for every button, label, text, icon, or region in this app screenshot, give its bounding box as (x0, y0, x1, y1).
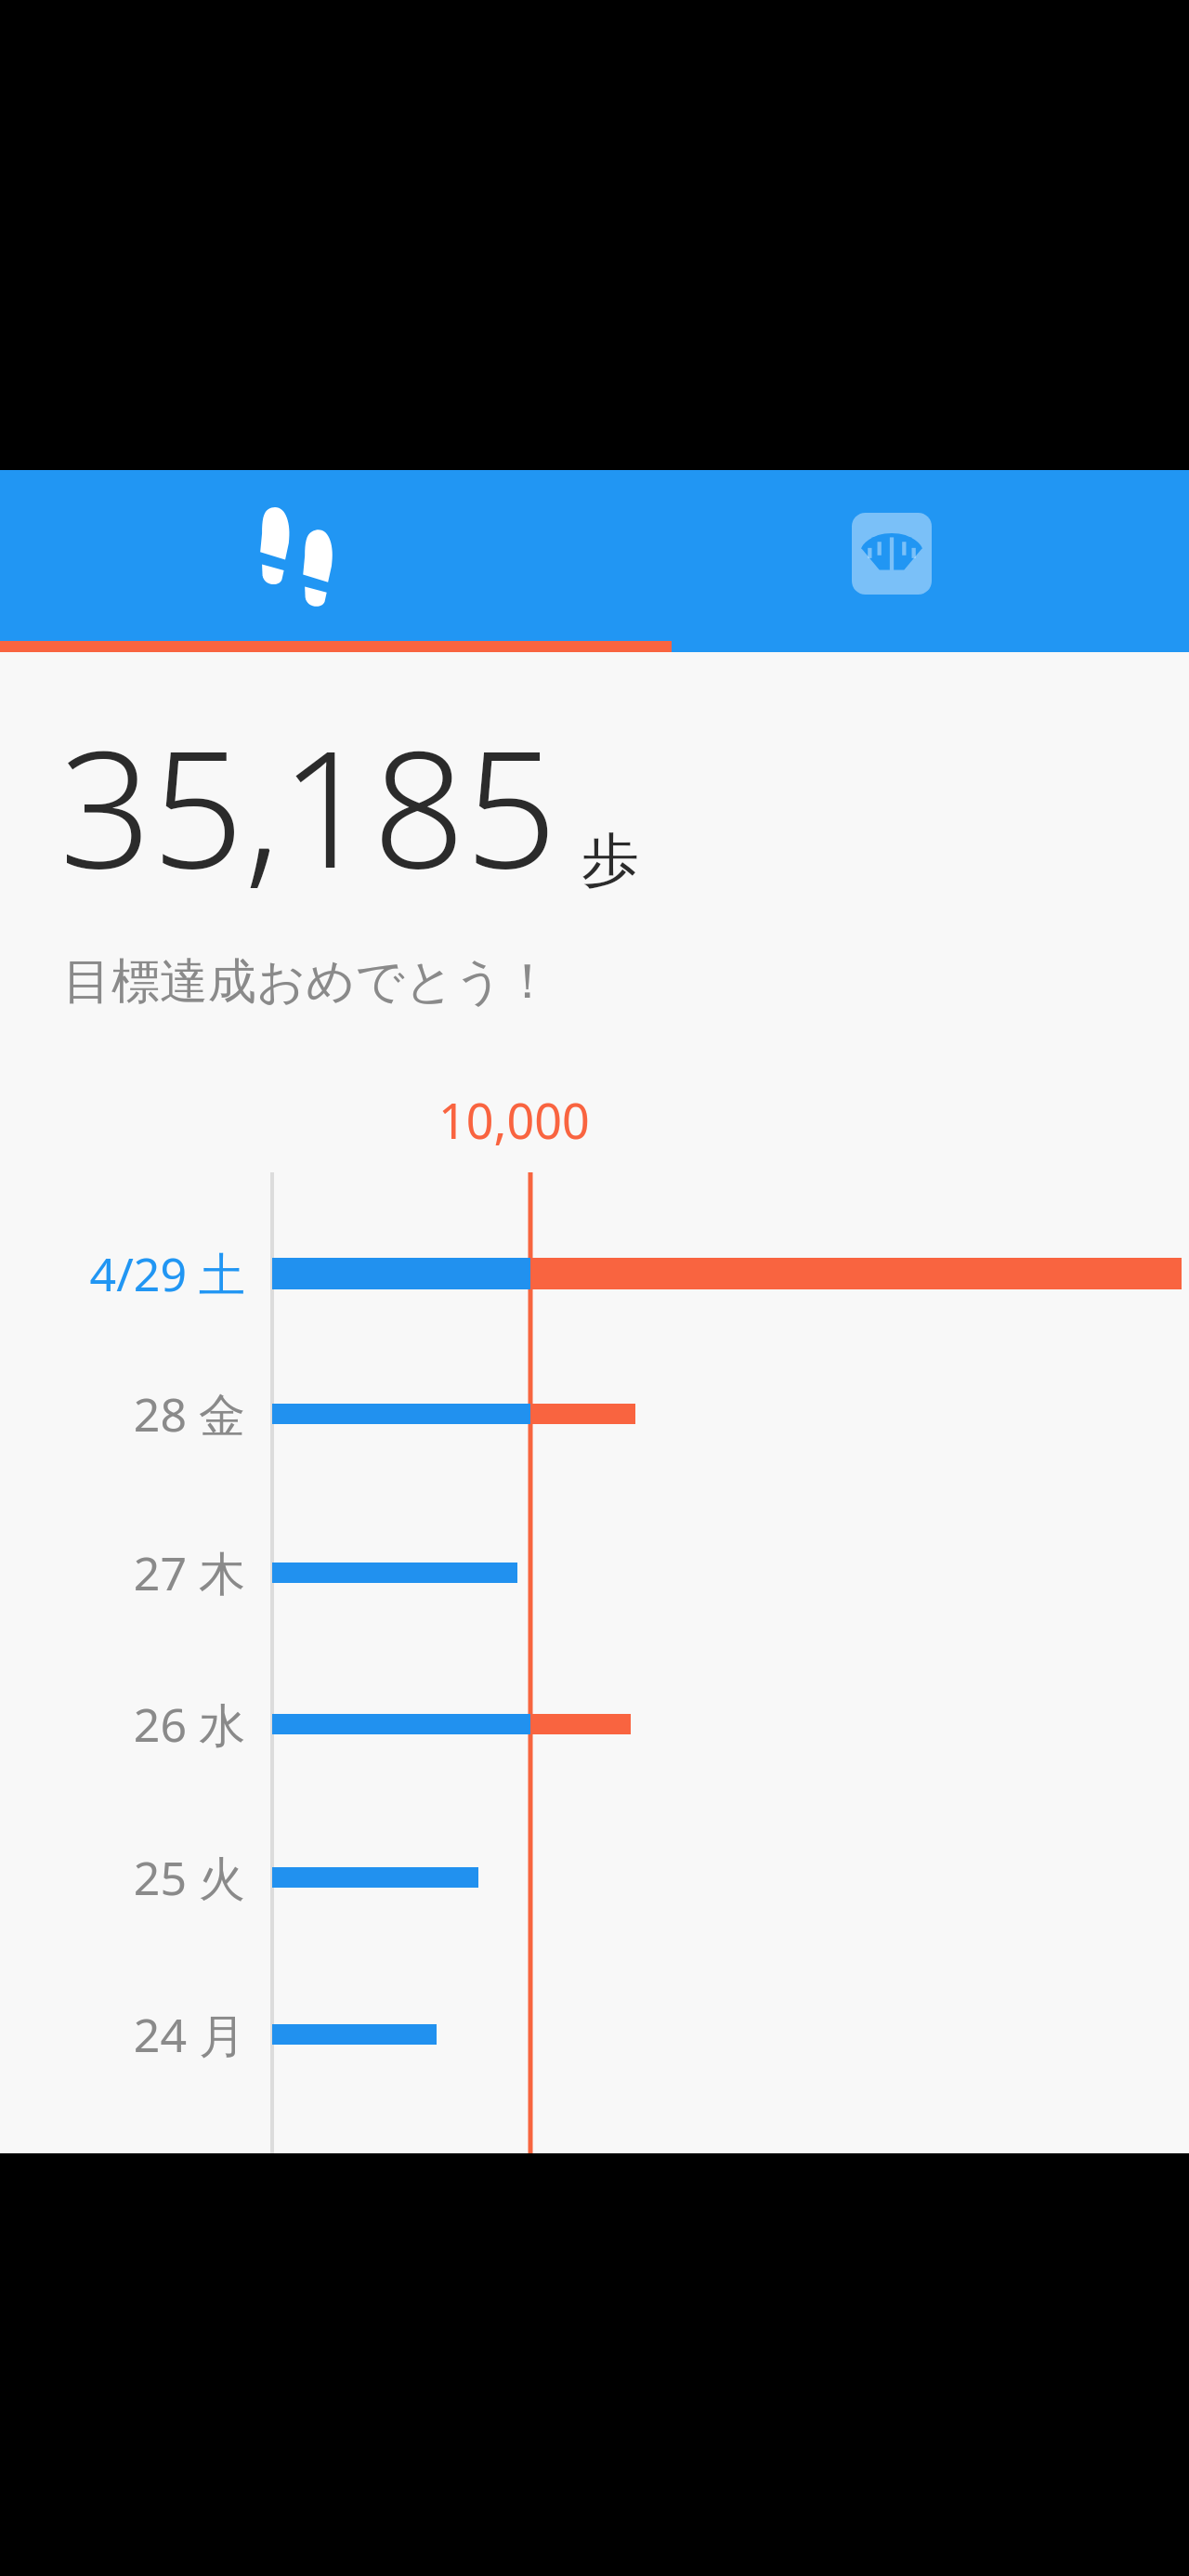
button[interactable]: 25 火 (0, 1842, 245, 1913)
button[interactable]: Steps (0, 470, 594, 652)
staticText: 25 火 (133, 1846, 245, 1909)
button[interactable]: 4/29 土 (0, 1238, 245, 1309)
staticText: 26 水 (133, 1693, 245, 1756)
staticText: 4/29 土 (89, 1242, 245, 1305)
button[interactable]: Weight (594, 470, 1189, 652)
button[interactable]: 27 木 (0, 1537, 245, 1608)
button[interactable]: 28 金 (0, 1379, 245, 1449)
staticText: 35,185 (59, 695, 557, 915)
staticText: 10,000 (438, 1087, 590, 1153)
staticText: 目標達成おめでとう！ (63, 951, 553, 1013)
button[interactable]: 24 月 (0, 1999, 245, 2070)
button[interactable]: 26 水 (0, 1689, 245, 1759)
staticText: 歩 (581, 824, 639, 896)
staticText: 24 月 (133, 2003, 245, 2066)
staticText: 27 木 (133, 1541, 245, 1604)
staticText: 28 金 (133, 1382, 245, 1445)
